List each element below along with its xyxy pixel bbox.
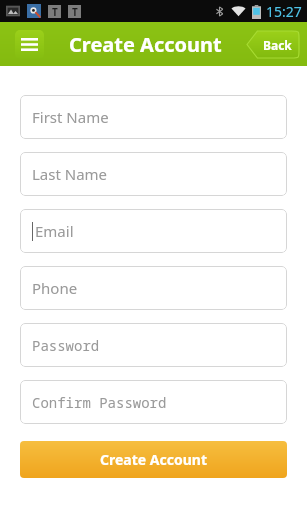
staticText: Last Name (32, 164, 108, 184)
button[interactable]: Last Name (20, 152, 287, 196)
staticText: T (52, 5, 58, 18)
button[interactable]: Create Account (20, 441, 287, 478)
staticText: 15:27 (266, 2, 302, 21)
button[interactable]: Password (20, 323, 287, 367)
staticText: Email (35, 221, 74, 241)
button[interactable]: Confirm Password (20, 380, 287, 424)
staticText: T (72, 5, 78, 18)
staticText: Password (32, 336, 100, 355)
button[interactable]: Email (20, 209, 287, 253)
staticText: First Name (32, 107, 109, 127)
button[interactable]: Menu (15, 30, 44, 59)
button[interactable]: First Name (20, 95, 287, 139)
staticText: Phone (32, 278, 78, 298)
staticText: Confirm Password (32, 393, 167, 412)
button[interactable]: Phone (20, 266, 287, 310)
staticText: Back (263, 37, 292, 53)
staticText: Create Account (69, 31, 222, 58)
button[interactable]: Back (247, 31, 299, 58)
staticText: Create Account (100, 450, 207, 469)
